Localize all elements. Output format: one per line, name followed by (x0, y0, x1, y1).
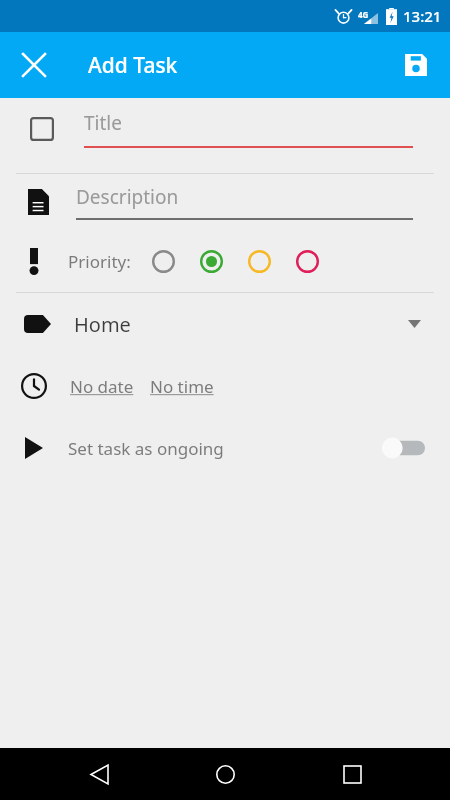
staticText: Set task as ongoing (68, 437, 224, 460)
button[interactable]: Priority option (290, 244, 324, 278)
button[interactable]: Priority option (242, 244, 276, 278)
button[interactable]: Priority option (194, 244, 228, 278)
staticText: 4G (358, 9, 369, 20)
staticText: Title (84, 110, 122, 136)
button[interactable]: Home (197, 748, 253, 800)
button[interactable]: Set task as ongoing toggle (381, 435, 425, 461)
staticText: Add Task (88, 51, 178, 80)
button[interactable]: Title (0, 98, 450, 160)
button[interactable]: Back (71, 748, 127, 800)
staticText: No time (150, 375, 214, 398)
button[interactable]: No time (148, 369, 216, 404)
button[interactable]: Description (0, 174, 450, 230)
staticText: Description (76, 184, 179, 210)
button[interactable]: No date (68, 369, 136, 404)
staticText: Home (74, 311, 131, 338)
button[interactable]: Recent apps (324, 748, 380, 800)
button[interactable]: Priority option (146, 244, 180, 278)
staticText: No date (70, 375, 134, 398)
button[interactable]: Home (0, 293, 450, 355)
button[interactable]: Set task as ongoing (0, 417, 450, 479)
staticText: Priority: (68, 250, 131, 273)
button[interactable]: Close (10, 41, 58, 89)
staticText: 13:21 (403, 6, 442, 26)
button[interactable]: Save (392, 41, 440, 89)
